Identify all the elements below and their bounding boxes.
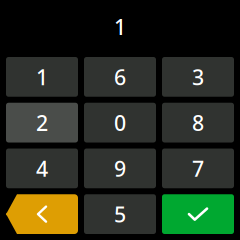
button[interactable]: 2 (6, 103, 78, 143)
staticText: 1 (36, 63, 48, 91)
staticText: 5 (114, 200, 126, 228)
button[interactable]: 9 (84, 148, 156, 188)
button[interactable]: Delete (6, 194, 78, 234)
button[interactable]: 6 (84, 57, 156, 97)
staticText: 4 (36, 154, 48, 182)
button[interactable]: 5 (84, 194, 156, 234)
staticText: 3 (192, 63, 204, 91)
button[interactable]: 4 (6, 148, 78, 188)
button[interactable]: 3 (162, 57, 234, 97)
staticText: 6 (114, 63, 126, 91)
button[interactable]: 8 (162, 103, 234, 143)
staticText: 9 (114, 154, 126, 182)
staticText: 8 (192, 108, 204, 137)
button[interactable]: Confirm (162, 194, 234, 234)
staticText: 7 (192, 154, 204, 182)
staticText: 1 (114, 13, 126, 41)
staticText: 2 (36, 108, 48, 137)
staticText: 0 (114, 108, 126, 137)
button[interactable]: 1 (6, 57, 78, 97)
button[interactable]: 7 (162, 148, 234, 188)
button[interactable]: 0 (84, 103, 156, 143)
